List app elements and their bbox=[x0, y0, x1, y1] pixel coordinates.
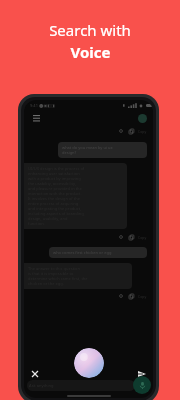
staticText: Copy bbox=[138, 129, 147, 134]
staticText: Ask anything bbox=[27, 383, 54, 388]
button[interactable]: Voice assistant bbox=[74, 348, 104, 378]
staticText: design? bbox=[62, 150, 77, 155]
staticText: what do you mean by ui ux bbox=[62, 145, 113, 150]
button[interactable]: Copy bbox=[128, 234, 134, 240]
button[interactable]: Ask anything bbox=[27, 380, 135, 391]
staticText: Copy bbox=[138, 294, 147, 299]
staticText: Voice bbox=[70, 42, 111, 62]
button[interactable]: Microphone bbox=[133, 376, 151, 394]
button[interactable]: Like bbox=[118, 128, 124, 134]
button[interactable]: what do you mean by ui ux bbox=[58, 142, 147, 158]
button[interactable]: Send bbox=[135, 367, 149, 381]
staticText: Copy bbox=[138, 235, 147, 240]
staticText: who comes first chicken or egg bbox=[53, 250, 112, 255]
button[interactable]: Close bbox=[28, 367, 42, 381]
button[interactable]: Copy bbox=[128, 128, 134, 134]
staticText: Search with bbox=[49, 20, 131, 40]
button[interactable]: who comes first chicken or egg bbox=[49, 247, 147, 258]
button[interactable]: Account bbox=[138, 114, 147, 123]
button[interactable]: Like bbox=[118, 293, 124, 299]
staticText: 9:41 ⬤▣◧◨ bbox=[30, 103, 55, 108]
button[interactable]: Like bbox=[118, 234, 124, 240]
button[interactable]: Copy bbox=[128, 293, 134, 299]
button[interactable]: Menu bbox=[30, 112, 42, 124]
